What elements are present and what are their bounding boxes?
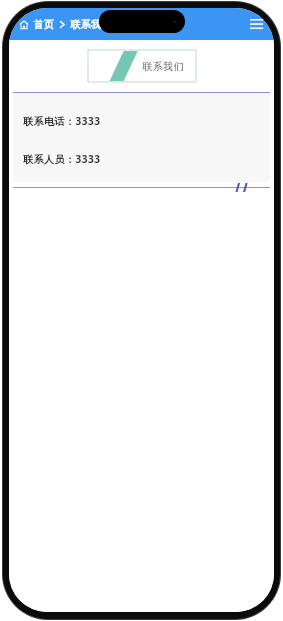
staticText: 联系我们 — [70, 18, 112, 31]
button[interactable]: 联系电话：3333 — [13, 110, 270, 132]
staticText: 联系我们 — [142, 60, 184, 73]
button[interactable]: 联系人员：3333 — [13, 148, 270, 170]
button[interactable]: 联系我们 — [88, 50, 196, 82]
staticText: 首页 — [33, 18, 54, 31]
staticText: 联系电话：3333 — [23, 114, 101, 128]
button[interactable]: 首页 — [17, 16, 114, 33]
staticText: 联系人员：3333 — [23, 152, 101, 166]
button[interactable]: Menu — [246, 14, 266, 34]
